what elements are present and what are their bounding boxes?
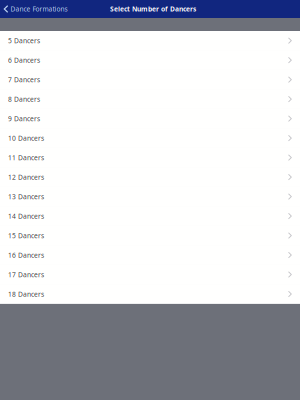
staticText: 7 Dancers [8, 75, 40, 84]
staticText: Select Number of Dancers [110, 5, 196, 13]
staticText: 14 Dancers [8, 212, 44, 221]
staticText: 6 Dancers [8, 56, 40, 65]
button[interactable]: 8 Dancers [0, 89, 300, 109]
button[interactable]: 17 Dancers [0, 265, 300, 284]
button[interactable]: 14 Dancers [0, 206, 300, 226]
button[interactable]: 6 Dancers [0, 50, 300, 70]
staticText: 5 Dancers [8, 36, 40, 45]
button[interactable]: 9 Dancers [0, 109, 300, 128]
staticText: 15 Dancers [8, 231, 44, 240]
staticText: 17 Dancers [8, 270, 44, 279]
staticText: 11 Dancers [8, 153, 44, 162]
button[interactable]: 5 Dancers [0, 31, 300, 50]
staticText: 9 Dancers [8, 114, 40, 123]
button[interactable]: 12 Dancers [0, 167, 300, 187]
staticText: 10 Dancers [8, 134, 44, 143]
staticText: 13 Dancers [8, 192, 44, 201]
staticText: 8 Dancers [8, 95, 40, 104]
button[interactable]: 13 Dancers [0, 187, 300, 206]
button[interactable]: 10 Dancers [0, 128, 300, 148]
button[interactable]: 7 Dancers [0, 70, 300, 89]
staticText: 18 Dancers [8, 290, 44, 299]
staticText: 12 Dancers [8, 173, 44, 182]
staticText: Dance Formations [11, 5, 68, 13]
button[interactable]: 11 Dancers [0, 148, 300, 167]
button[interactable]: Dance Formations [0, 3, 68, 15]
button[interactable]: 15 Dancers [0, 226, 300, 245]
button[interactable]: 16 Dancers [0, 245, 300, 265]
button[interactable]: 18 Dancers [0, 284, 300, 304]
staticText: 16 Dancers [8, 251, 44, 260]
